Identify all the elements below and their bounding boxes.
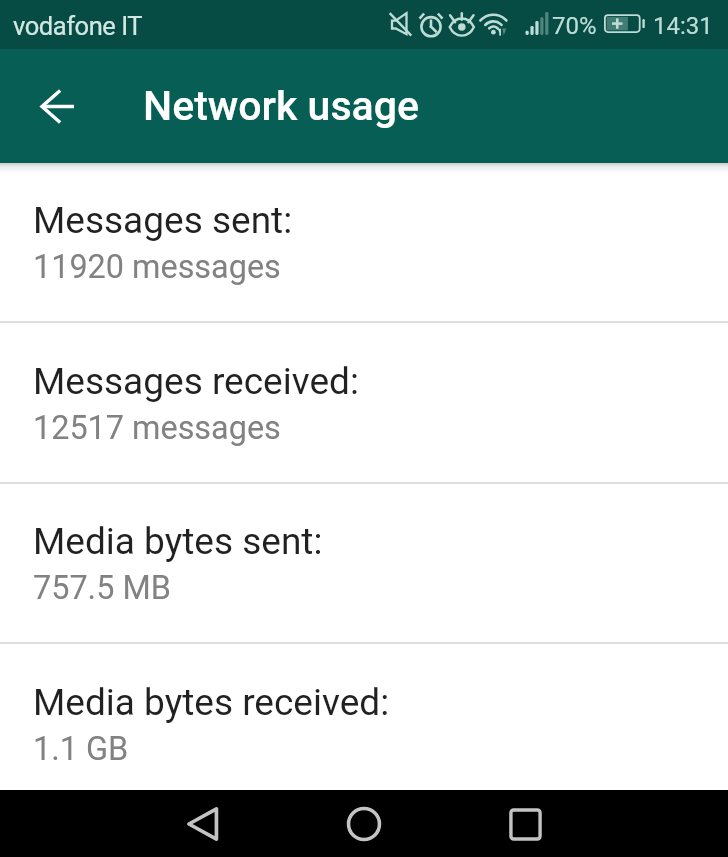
staticText: 757.5 MB: [33, 569, 171, 607]
button[interactable]: Messages sent:: [0, 163, 728, 324]
button[interactable]: Home: [331, 791, 397, 857]
staticText: Messages received:: [33, 360, 359, 403]
button[interactable]: Messages received:: [0, 324, 728, 485]
staticText: Media bytes sent:: [33, 520, 323, 563]
staticText: Media bytes received:: [33, 681, 390, 724]
button[interactable]: Recents: [492, 791, 558, 857]
button[interactable]: Media bytes received:: [0, 645, 728, 790]
staticText: 11920 messages: [33, 248, 281, 286]
button[interactable]: Back: [170, 791, 236, 857]
staticText: 70%: [552, 12, 597, 40]
staticText: 14:31: [653, 12, 713, 40]
button[interactable]: Back: [24, 73, 90, 139]
staticText: 12517 messages: [33, 409, 281, 447]
staticText: vodafone IT: [13, 11, 143, 41]
staticText: 1.1 GB: [33, 730, 129, 768]
staticText: Network usage: [143, 82, 420, 130]
button[interactable]: Media bytes sent:: [0, 484, 728, 645]
staticText: Messages sent:: [33, 199, 293, 242]
